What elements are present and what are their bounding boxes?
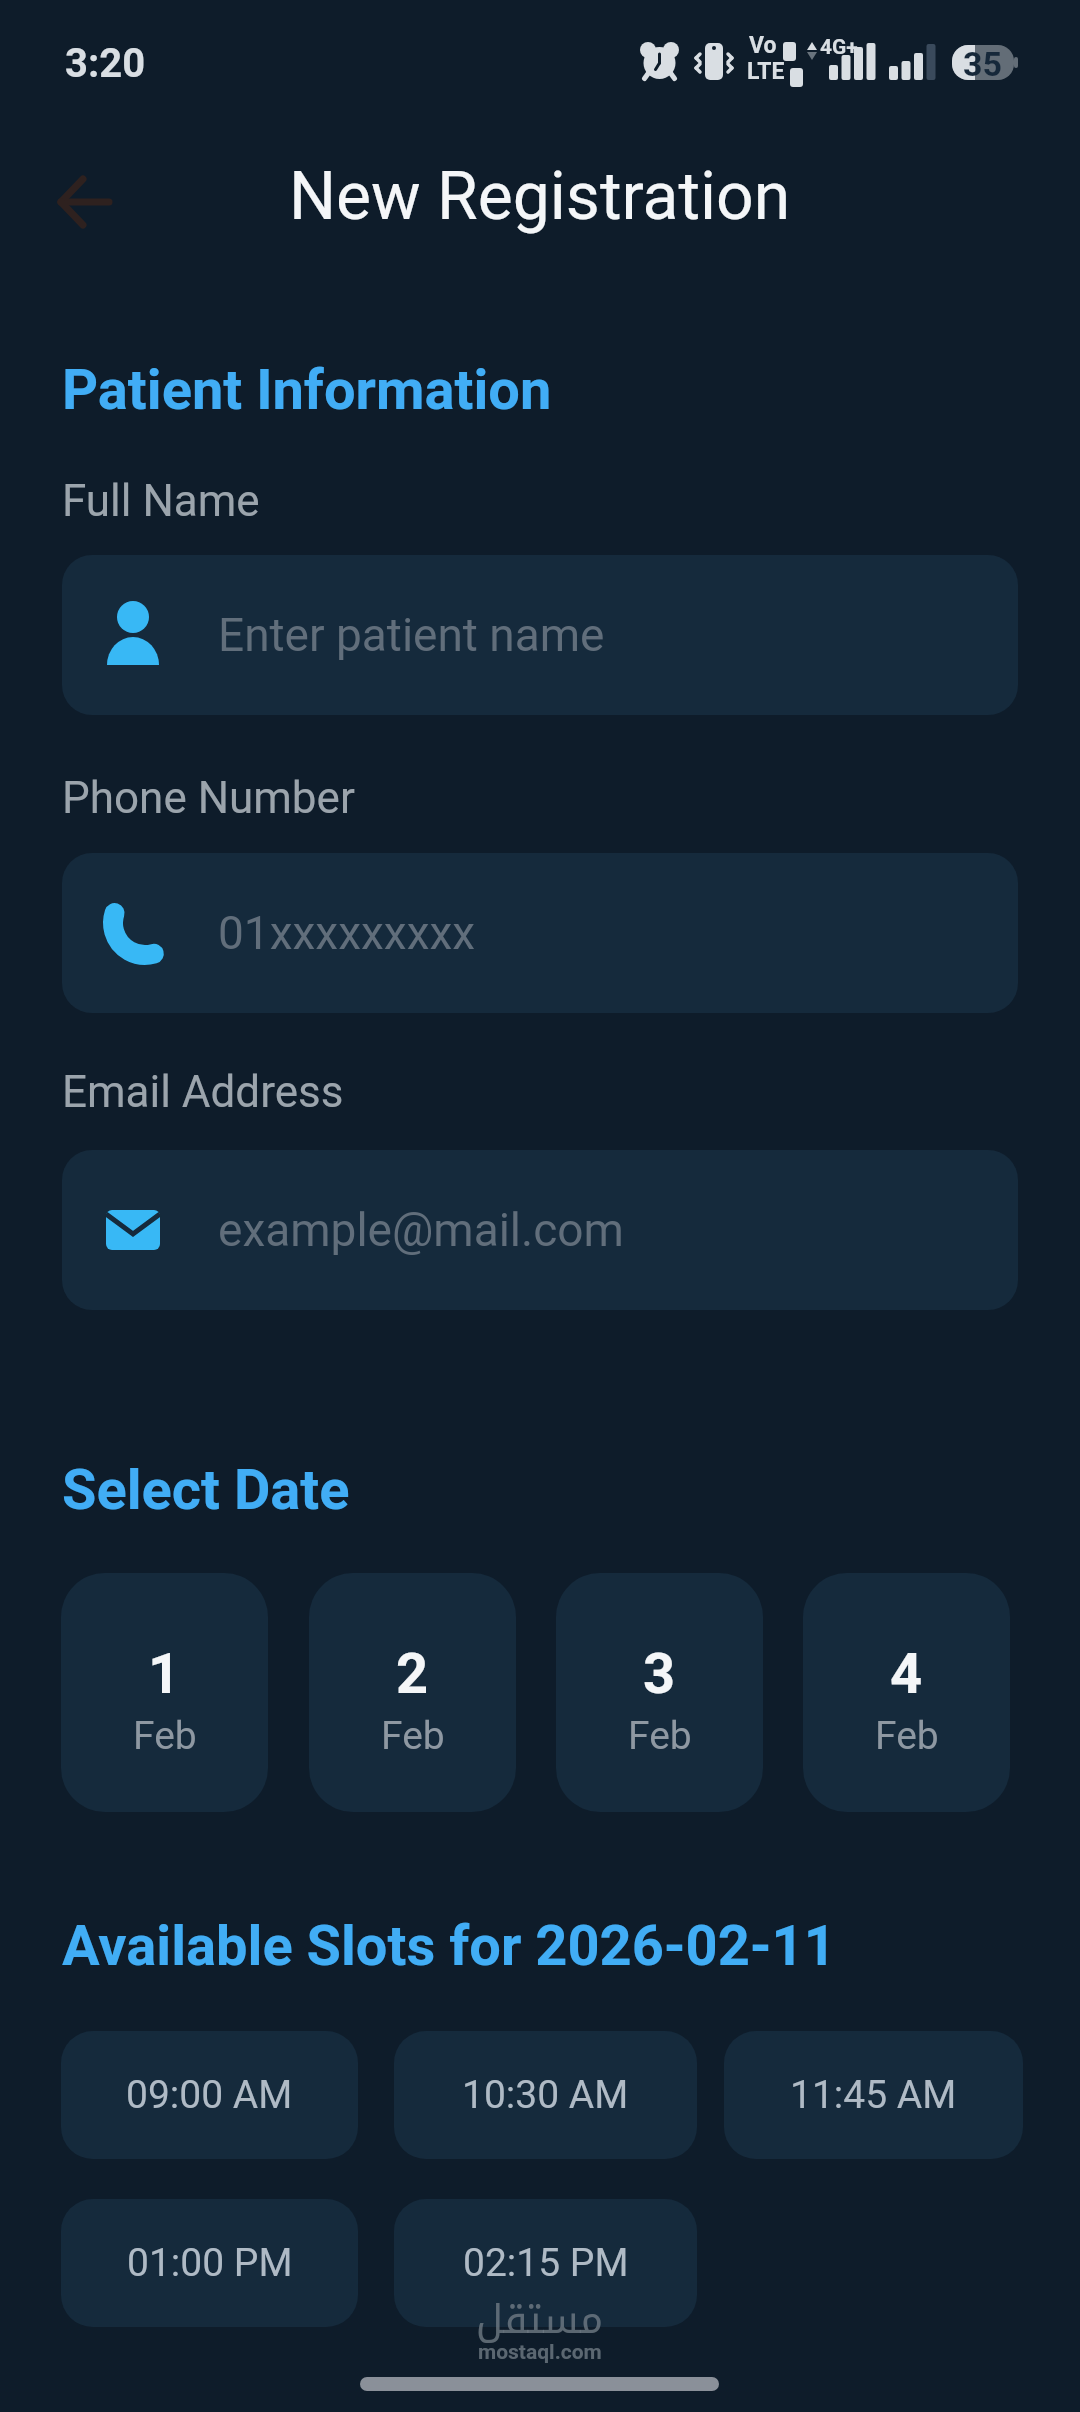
- button[interactable]: 4: [803, 1573, 1010, 1812]
- staticText: 35: [963, 44, 1003, 84]
- staticText: LTE: [747, 58, 785, 85]
- button[interactable]: 11:45 AM: [724, 2031, 1023, 2159]
- button[interactable]: 10:30 AM: [394, 2031, 697, 2159]
- staticText: Feb: [628, 1713, 692, 1759]
- button[interactable]: 02:15 PM: [394, 2199, 697, 2327]
- staticText: Phone Number: [62, 772, 355, 824]
- staticText: Feb: [381, 1713, 445, 1759]
- staticText: Enter patient name: [218, 608, 605, 662]
- button[interactable]: example@mail.com: [62, 1150, 1018, 1310]
- button[interactable]: Enter patient name: [62, 555, 1018, 715]
- staticText: 01:00 PM: [127, 2240, 293, 2286]
- staticText: 02:15 PM: [463, 2240, 629, 2286]
- staticText: Feb: [133, 1713, 197, 1759]
- staticText: Patient Information: [62, 357, 552, 423]
- staticText: mostaql.com: [478, 2340, 602, 2365]
- staticText: 01xxxxxxxxx: [218, 906, 476, 960]
- button[interactable]: 01:00 PM: [61, 2199, 358, 2327]
- staticText: Available Slots for 2026-02-11: [62, 1913, 836, 1979]
- staticText: Select Date: [62, 1457, 350, 1523]
- staticText: 11:45 AM: [790, 2072, 957, 2118]
- staticText: example@mail.com: [218, 1203, 624, 1257]
- staticText: Full Name: [62, 475, 260, 527]
- staticText: مستقل: [476, 2282, 604, 2358]
- button[interactable]: 2: [309, 1573, 516, 1812]
- staticText: 3: [643, 1641, 676, 1707]
- button[interactable]: 1: [61, 1573, 268, 1812]
- staticText: Email Address: [62, 1066, 344, 1118]
- staticText: 3:20: [65, 40, 146, 87]
- staticText: Vo: [749, 32, 777, 59]
- staticText: 4G+: [820, 35, 858, 60]
- staticText: 10:30 AM: [462, 2072, 629, 2118]
- staticText: 4: [890, 1641, 923, 1707]
- button[interactable]: [35, 152, 135, 252]
- button[interactable]: 01xxxxxxxxx: [62, 853, 1018, 1013]
- staticText: 1: [148, 1641, 181, 1707]
- staticText: Feb: [875, 1713, 939, 1759]
- button[interactable]: 3: [556, 1573, 763, 1812]
- staticText: New Registration: [289, 158, 791, 235]
- staticText: 09:00 AM: [126, 2072, 293, 2118]
- button[interactable]: 09:00 AM: [61, 2031, 358, 2159]
- staticText: 2: [396, 1641, 429, 1707]
